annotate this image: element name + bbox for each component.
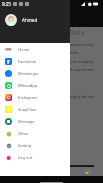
staticText: Home <box>18 47 30 52</box>
button[interactable]: Instagram <box>0 91 70 103</box>
staticText: Data <box>69 28 85 38</box>
staticText: t or multiple & any where. <box>70 59 95 72</box>
staticText: Instagram <box>18 95 38 100</box>
staticText: opy it for use. <box>70 94 96 99</box>
button[interactable]: Setting <box>0 139 70 151</box>
staticText: about losing data. <box>70 42 94 55</box>
staticText: SnapChat <box>18 107 37 112</box>
button[interactable]: Message <box>0 115 70 127</box>
staticText: f <box>7 58 10 65</box>
staticText: Messenger <box>18 71 39 76</box>
staticText: Log out <box>18 155 33 160</box>
staticText: WhatsApp <box>18 83 38 88</box>
button[interactable]: SnapChat <box>0 103 70 115</box>
staticText: Message <box>18 119 35 124</box>
staticText: Other <box>18 131 29 136</box>
button[interactable]: Other <box>0 127 70 139</box>
staticText: Ahmed <box>22 17 38 23</box>
button[interactable]: Google <box>84 167 91 174</box>
button[interactable]: Messenger <box>0 67 70 79</box>
button[interactable]: Log out <box>0 151 70 163</box>
button[interactable]: f <box>0 55 70 67</box>
staticText: Setting <box>18 143 32 148</box>
button[interactable]: Home <box>0 43 70 55</box>
button[interactable]: WhatsApp <box>0 79 70 91</box>
staticText: Facebook <box>18 59 36 64</box>
staticText: 9:25 <box>2 1 11 7</box>
